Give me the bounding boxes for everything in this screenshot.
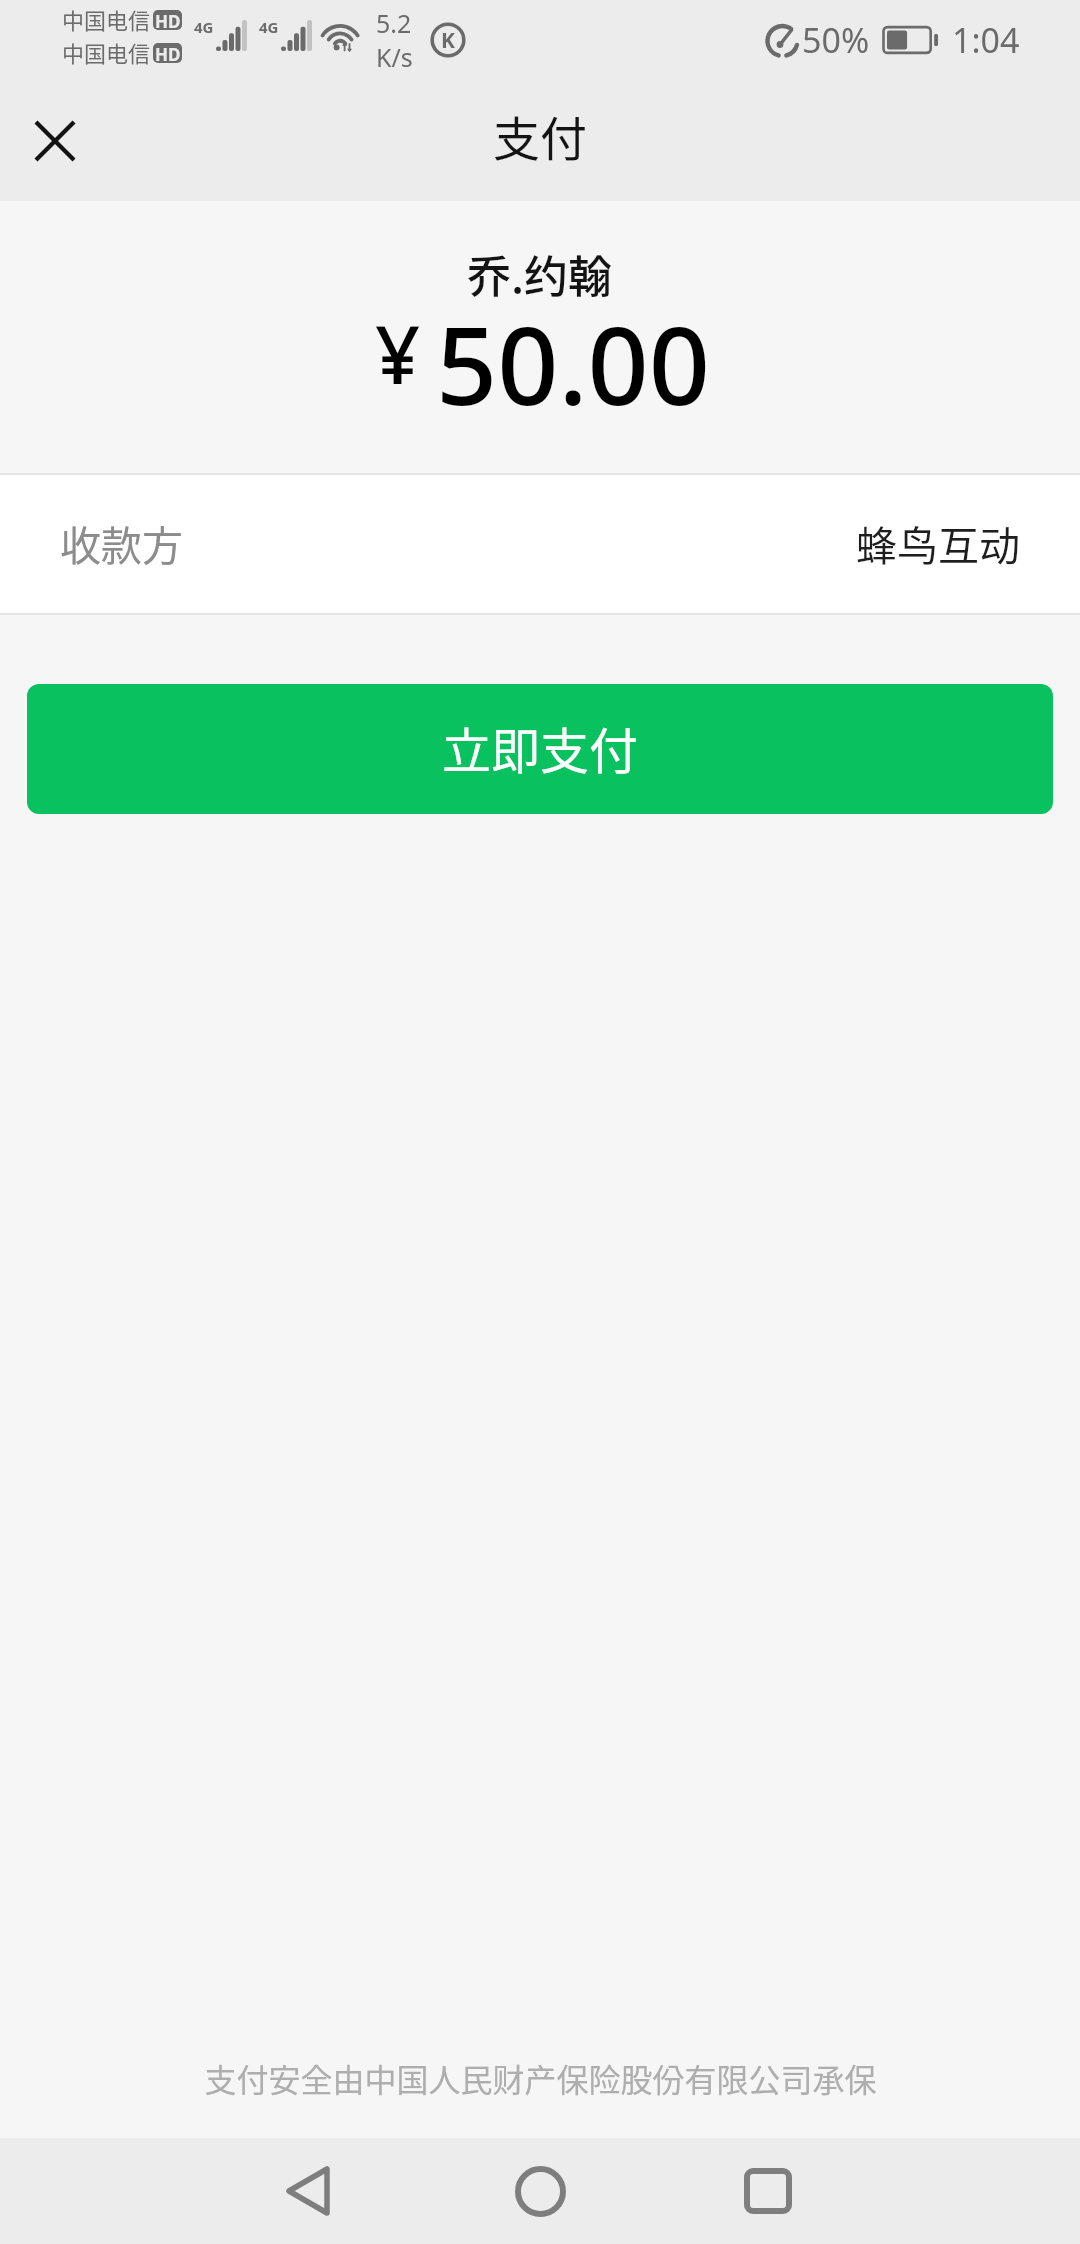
staticText: 中国电信: [62, 36, 151, 68]
staticText: ¥: [375, 300, 421, 408]
staticText: HD: [155, 10, 181, 30]
button[interactable]: 立即支付: [27, 684, 1053, 814]
button[interactable]: 收款方: [0, 475, 1080, 613]
staticText: 4G: [194, 17, 214, 37]
staticText: K/s: [376, 40, 413, 74]
staticText: 1:04: [952, 17, 1020, 63]
button[interactable]: Recents: [708, 2138, 828, 2244]
staticText: 50%: [802, 17, 870, 63]
staticText: HD: [155, 43, 181, 63]
staticText: 50.00: [436, 291, 710, 437]
button[interactable]: Close: [0, 80, 110, 201]
button[interactable]: Back: [248, 2138, 368, 2244]
staticText: 蜂鸟互动: [856, 513, 1020, 572]
staticText: 支付安全由中国人民财产保险股份有限公司承保: [204, 2055, 877, 2101]
staticText: 收款方: [60, 513, 183, 572]
staticText: 立即支付: [442, 712, 639, 783]
button[interactable]: Home: [480, 2138, 600, 2244]
staticText: 中国电信: [62, 3, 151, 35]
staticText: 5.2: [376, 6, 412, 40]
staticText: 乔.约翰: [467, 242, 613, 306]
staticText: 支付: [493, 101, 587, 169]
staticText: K: [441, 26, 455, 55]
staticText: 4G: [259, 17, 279, 37]
